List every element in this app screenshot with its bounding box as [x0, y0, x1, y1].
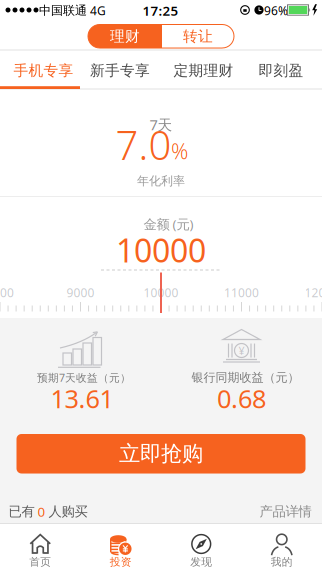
- button[interactable]: 即刻盈: [241, 51, 321, 90]
- button[interactable]: 我的: [241, 524, 322, 572]
- button[interactable]: 手机专享: [3, 51, 84, 90]
- staticText: 投资: [110, 555, 132, 568]
- staticText: 发现: [190, 555, 212, 568]
- staticText: 新手专享: [90, 61, 150, 79]
- button[interactable]: 发现: [161, 524, 241, 572]
- staticText: 年化利率: [137, 174, 185, 188]
- staticText: 立即抢购: [119, 441, 203, 467]
- staticText: %: [171, 137, 188, 165]
- staticText: 即刻盈: [258, 61, 303, 79]
- staticText: 理财: [110, 27, 140, 45]
- staticText: 7天: [149, 115, 172, 134]
- button[interactable]: 新手专享: [80, 51, 160, 90]
- staticText: 人购买: [48, 503, 87, 520]
- staticText: 0: [37, 503, 45, 520]
- staticText: 中国联通: [39, 3, 87, 18]
- button[interactable]: 理财: [88, 24, 162, 48]
- staticText: 银行同期收益（元）: [191, 370, 299, 385]
- staticText: ¥: [238, 343, 244, 358]
- staticText: 我的: [271, 555, 293, 568]
- staticText: 已有: [8, 503, 34, 520]
- staticText: 10000: [143, 284, 178, 300]
- staticText: 产品详情: [259, 503, 311, 520]
- staticText: 金额 (元): [143, 215, 193, 233]
- staticText: 17:25: [142, 2, 178, 19]
- button[interactable]: 转让: [162, 24, 234, 48]
- staticText: 10000: [116, 229, 206, 271]
- staticText: 7.0: [115, 118, 171, 171]
- button[interactable]: 定期理财: [163, 51, 244, 90]
- staticText: 0.68: [217, 382, 266, 415]
- staticText: 转让: [183, 27, 213, 45]
- staticText: 手机专享: [13, 61, 73, 79]
- staticText: 8000: [0, 284, 14, 300]
- staticText: 9000: [66, 284, 94, 300]
- staticText: 定期理财: [173, 61, 233, 79]
- staticText: 12000: [304, 284, 322, 300]
- button[interactable]: 立即抢购: [16, 434, 305, 473]
- button[interactable]: 首页: [0, 524, 80, 572]
- staticText: 11000: [224, 284, 259, 300]
- staticText: 13.61: [50, 382, 113, 415]
- staticText: 4G: [90, 2, 106, 18]
- button[interactable]: 产品详情: [259, 503, 311, 520]
- staticText: 96%: [264, 2, 288, 18]
- staticText: 首页: [29, 555, 51, 568]
- button[interactable]: 投资: [80, 524, 161, 572]
- staticText: 预期7天收益（元）: [37, 370, 131, 385]
